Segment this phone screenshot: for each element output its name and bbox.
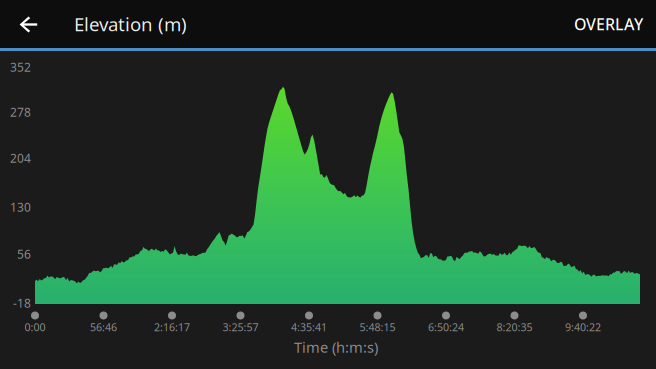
staticText: OVERLAY [574,13,643,35]
staticText: 2:16:17 [154,320,190,334]
staticText: 56:46 [90,320,117,334]
staticText: 6:50:24 [428,320,464,334]
staticText: 4:35:41 [291,320,327,334]
staticText: -18 [13,295,31,311]
staticText: 0:00 [24,320,45,334]
staticText: 8:20:35 [496,320,532,334]
staticText: 9:40:22 [565,320,601,334]
staticText: Time (h:m:s) [294,337,378,357]
button[interactable]: OVERLAY [533,0,643,48]
staticText: 130 [10,199,31,215]
staticText: Elevation (m) [74,12,187,36]
staticText: 56 [17,246,31,262]
staticText: 204 [10,150,31,166]
staticText: 5:48:15 [359,320,395,334]
staticText: 3:25:57 [222,320,258,334]
button[interactable]: Back [0,0,48,48]
staticText: 278 [10,104,31,120]
staticText: 352 [10,59,31,75]
